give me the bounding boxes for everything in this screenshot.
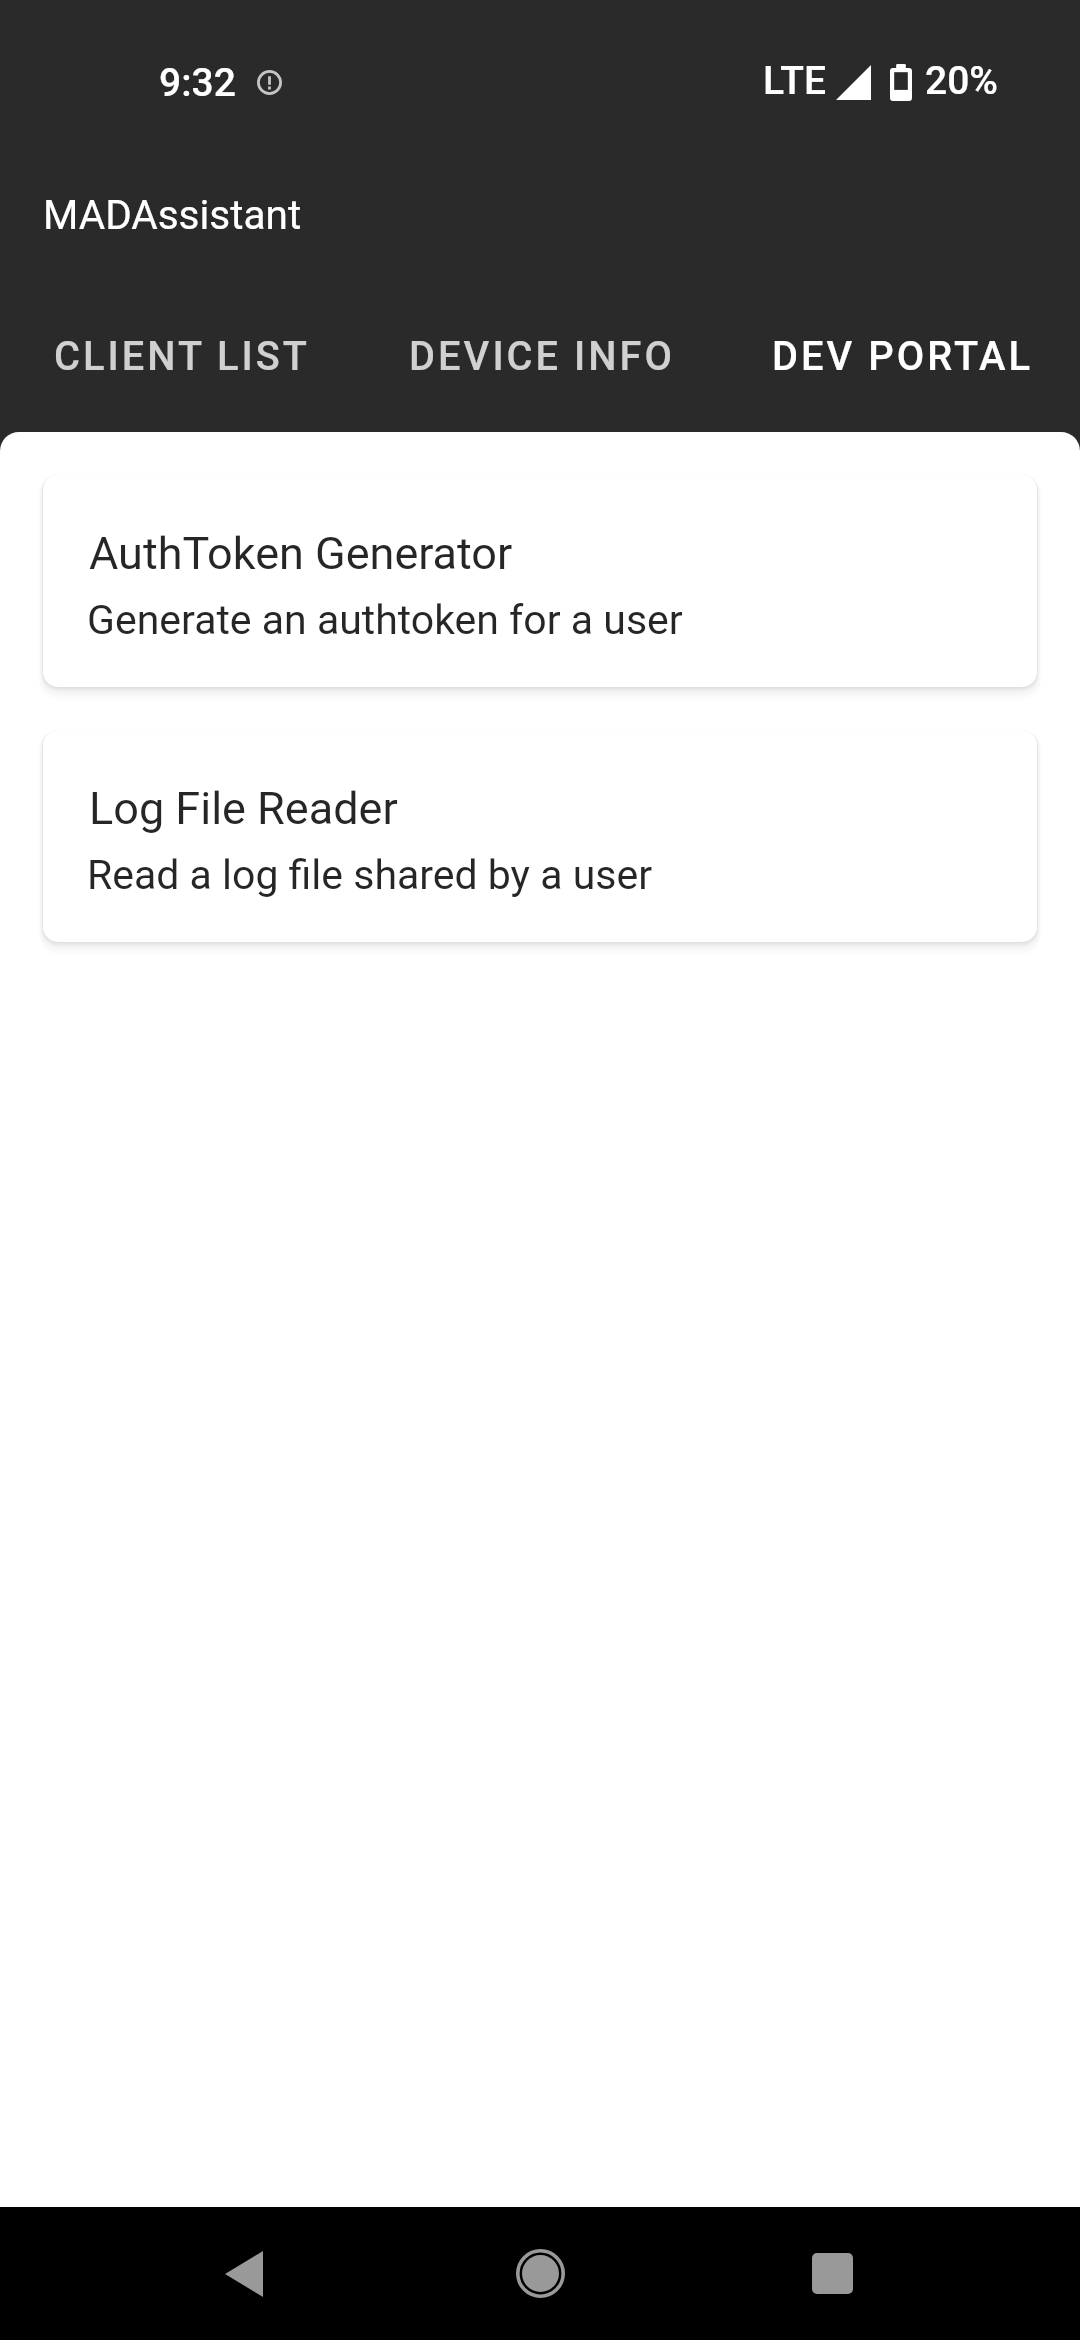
button[interactable]: Home xyxy=(474,2207,606,2340)
button[interactable]: Log File Reader xyxy=(43,730,1037,942)
button[interactable]: DEVICE INFO xyxy=(360,290,720,432)
staticText: DEVICE INFO xyxy=(409,333,675,380)
button[interactable]: CLIENT LIST xyxy=(0,290,360,432)
staticText: MADAssistant xyxy=(43,191,302,238)
staticText: 9:32 xyxy=(159,60,236,106)
staticText: Read a log file shared by a user xyxy=(87,851,653,899)
button[interactable]: Recent apps xyxy=(766,2207,898,2340)
staticText: Generate an authtoken for a user xyxy=(87,596,683,644)
button[interactable]: AuthToken Generator xyxy=(43,475,1037,687)
staticText: 20% xyxy=(925,58,998,104)
button[interactable]: Back xyxy=(178,2207,310,2340)
staticText: CLIENT LIST xyxy=(54,333,310,380)
staticText: Log File Reader xyxy=(89,782,398,835)
staticText: AuthToken Generator xyxy=(89,527,513,580)
staticText: DEV PORTAL xyxy=(772,333,1033,380)
button[interactable]: DEV PORTAL xyxy=(720,290,1080,432)
staticText: LTE xyxy=(763,58,826,104)
